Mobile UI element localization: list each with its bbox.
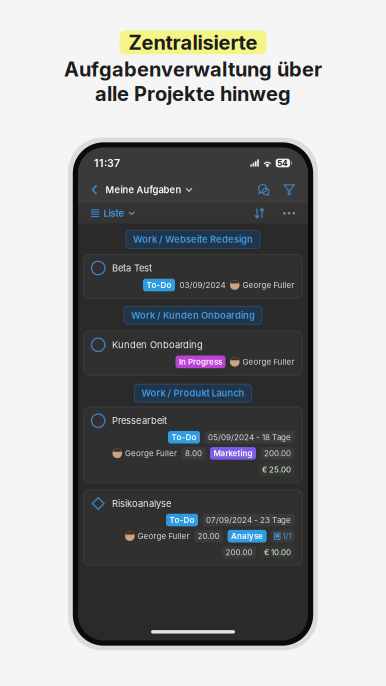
staticText: George Fuller	[242, 280, 294, 290]
staticText: Aufgabenverwaltung über	[64, 57, 322, 81]
staticText: Analyse	[231, 531, 263, 541]
staticText: Meine Aufgaben	[105, 184, 181, 195]
staticText: Beta Test	[112, 262, 152, 273]
staticText: 8.00	[185, 449, 202, 458]
button[interactable]: Work / Webseite Redesign	[126, 230, 260, 248]
button[interactable]: Beta Test	[83, 254, 302, 298]
button[interactable]: More	[265, 212, 295, 214]
button[interactable]: Work / Produkt Launch	[134, 384, 251, 402]
staticText: Work / Webseite Redesign	[133, 234, 253, 245]
staticText: 200.00	[225, 548, 252, 557]
staticText: 03/09/2024	[179, 280, 225, 290]
staticText: € 10.00	[264, 548, 291, 557]
button[interactable]: Comments	[258, 184, 269, 195]
staticText: 54	[277, 158, 287, 168]
staticText: To-Do	[169, 515, 194, 525]
staticText: alle Projekte hinweg	[95, 82, 291, 106]
staticText: Work / Kunden Onboarding	[131, 310, 255, 321]
staticText: 1/1	[282, 531, 291, 541]
staticText: To-Do	[171, 432, 196, 442]
button[interactable]: Sort	[254, 208, 265, 218]
staticText: Pressearbeit	[112, 415, 167, 426]
staticText: To-Do	[146, 280, 171, 290]
staticText: Work / Produkt Launch	[141, 388, 244, 399]
staticText: Kunden Onboarding	[112, 339, 203, 350]
staticText: 11:37	[94, 157, 120, 169]
staticText: € 25.00	[262, 465, 291, 474]
staticText: Liste	[103, 208, 124, 219]
staticText: Marketing	[213, 449, 252, 458]
button[interactable]: Liste	[91, 208, 135, 219]
staticText: Risikoanalyse	[112, 498, 171, 509]
button[interactable]: Filter	[269, 183, 295, 196]
staticText: George Fuller	[125, 449, 177, 458]
staticText: 07/09/2024 - 23 Tage	[206, 515, 291, 525]
staticText: 200.00	[264, 449, 291, 458]
button[interactable]: Back	[91, 184, 98, 195]
staticText: 20.00	[198, 531, 220, 541]
staticText: George Fuller	[138, 531, 190, 541]
staticText: George Fuller	[242, 357, 294, 367]
button[interactable]: Kunden Onboarding	[83, 331, 302, 375]
button[interactable]: Risikoanalyse	[83, 490, 302, 566]
button[interactable]: Meine Aufgaben	[98, 184, 192, 195]
staticText: 05/09/2024 - 18 Tage	[208, 432, 291, 442]
staticText: In Progress	[179, 357, 222, 367]
staticText: Zentralisierte	[128, 31, 257, 54]
button[interactable]: Pressearbeit	[83, 407, 302, 483]
button[interactable]: Work / Kunden Onboarding	[124, 306, 262, 324]
